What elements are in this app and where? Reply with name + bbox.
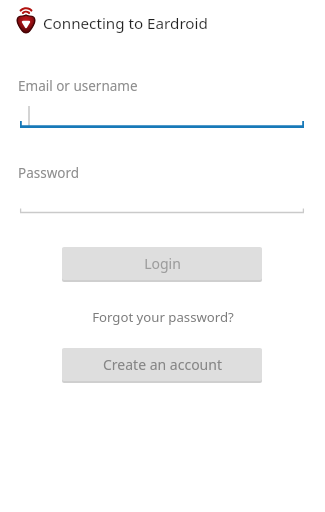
staticText: Connecting to Eardroid <box>43 13 208 34</box>
button[interactable]: Forgot your password? <box>0 308 325 326</box>
staticText: Forgot your password? <box>92 308 234 326</box>
button[interactable] <box>18 182 306 215</box>
button[interactable] <box>18 96 306 130</box>
staticText: Password <box>18 164 80 182</box>
staticText: Create an account <box>103 355 222 374</box>
button[interactable]: Login <box>62 247 262 280</box>
button[interactable]: Create an account <box>62 348 262 381</box>
staticText: Email or username <box>18 77 138 95</box>
staticText: Login <box>144 254 181 273</box>
